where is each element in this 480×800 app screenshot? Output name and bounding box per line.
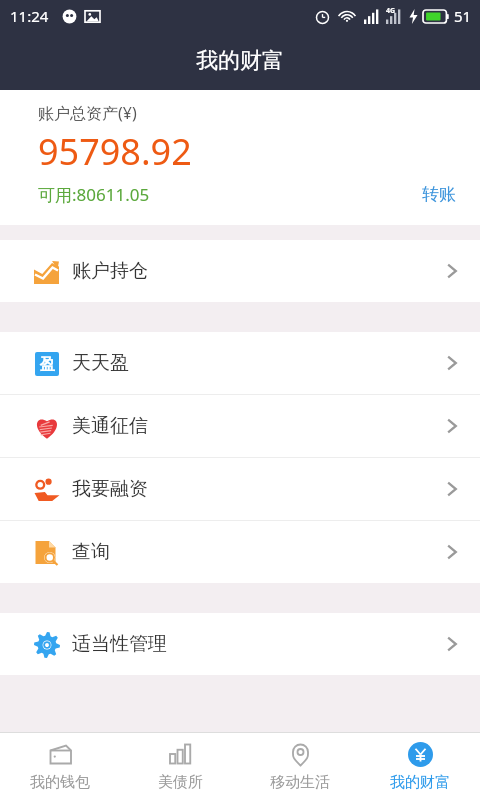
button[interactable]: 查询 bbox=[0, 521, 480, 583]
staticText: 转账 bbox=[422, 184, 456, 205]
staticText: 适当性管理 bbox=[72, 632, 167, 656]
staticText: 95798.92 bbox=[38, 127, 192, 176]
staticText: 盈 bbox=[40, 355, 55, 374]
staticText: 移动生活 bbox=[270, 773, 330, 792]
staticText: 天天盈 bbox=[72, 351, 129, 375]
staticText: 11:24 bbox=[10, 6, 49, 26]
button[interactable]: 盈 bbox=[0, 332, 480, 394]
staticText: 美通征信 bbox=[72, 414, 148, 438]
button[interactable]: 我的财富 bbox=[360, 733, 480, 800]
button[interactable]: 美债所 bbox=[120, 733, 240, 800]
staticText: 我的钱包 bbox=[30, 773, 90, 792]
button[interactable]: 美通征信 bbox=[0, 395, 480, 457]
button[interactable]: 转账 bbox=[418, 180, 460, 209]
staticText: 查询 bbox=[72, 540, 110, 564]
staticText: 我的财富 bbox=[390, 773, 450, 792]
button[interactable]: 账户持仓 bbox=[0, 240, 480, 302]
staticText: 我要融资 bbox=[72, 477, 148, 501]
button[interactable]: 我的钱包 bbox=[0, 733, 120, 800]
button[interactable]: 我要融资 bbox=[0, 458, 480, 520]
staticText: 4G bbox=[386, 6, 396, 16]
staticText: 51 bbox=[454, 6, 472, 26]
staticText: 账户持仓 bbox=[72, 259, 148, 283]
staticText: 我的财富 bbox=[196, 47, 284, 75]
staticText: 可用:80611.05 bbox=[38, 183, 150, 206]
staticText: 账户总资产(¥) bbox=[38, 102, 137, 124]
staticText: 美债所 bbox=[158, 773, 203, 792]
button[interactable]: 移动生活 bbox=[240, 733, 360, 800]
button[interactable]: 适当性管理 bbox=[0, 613, 480, 675]
